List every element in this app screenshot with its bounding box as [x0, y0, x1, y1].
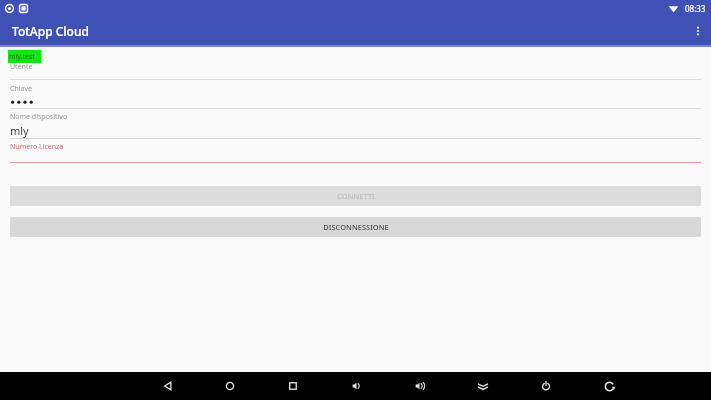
button[interactable]: Volume up [405, 372, 433, 400]
staticText: mly [10, 123, 29, 138]
button[interactable]: Rotate [595, 372, 623, 400]
staticText: Numero Licenza [10, 142, 64, 152]
staticText: CONNETTI [337, 191, 375, 201]
button[interactable]: Back [154, 372, 182, 400]
button[interactable]: Expand [469, 372, 497, 400]
button[interactable]: Recent apps [279, 372, 307, 400]
staticText: 08:33 [685, 3, 706, 14]
staticText: Nome dispositivo [10, 112, 68, 122]
staticText: mly.test [9, 52, 35, 62]
button[interactable]: DISCONNESSIONE [10, 217, 701, 237]
staticText: TotApp Cloud [12, 23, 89, 39]
staticText: DISCONNESSIONE [323, 222, 389, 232]
button[interactable]: Home [216, 372, 244, 400]
button[interactable]: Power [532, 372, 560, 400]
staticText: Chiave [10, 84, 32, 94]
button[interactable]: Volume down [342, 372, 370, 400]
staticText: Utente [10, 62, 33, 72]
button[interactable]: More options [685, 18, 711, 44]
